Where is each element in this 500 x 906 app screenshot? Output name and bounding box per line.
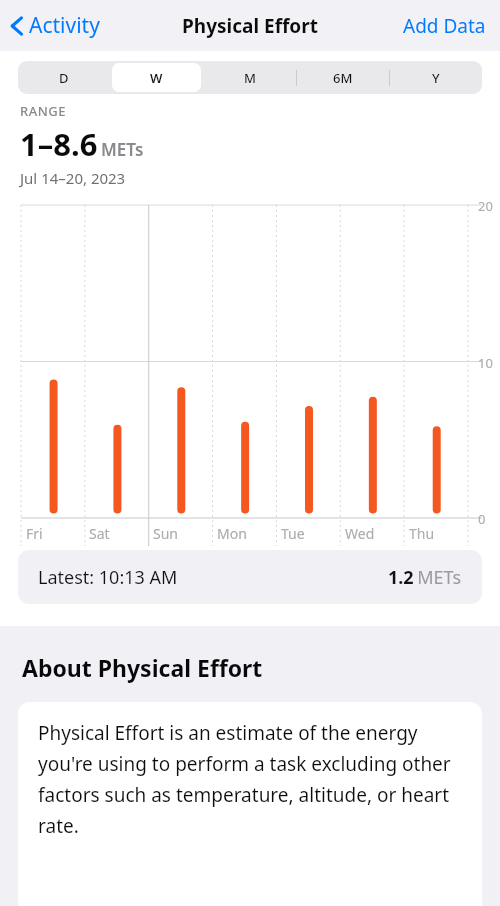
staticText: Thu [409, 524, 435, 543]
staticText: Physical Effort [182, 13, 318, 39]
staticText: M [244, 69, 256, 87]
staticText: 6M [333, 69, 353, 87]
staticText: Sun [153, 524, 178, 543]
button[interactable]: M [205, 63, 294, 92]
staticText: Jul 14–20, 2023 [20, 168, 126, 188]
staticText: Sat [89, 524, 110, 543]
button[interactable]: D [20, 63, 108, 92]
staticText: D [59, 69, 69, 87]
staticText: 0 [478, 510, 486, 528]
staticText: Latest: 10:13 AM [38, 565, 178, 590]
staticText: 10 [478, 354, 493, 372]
staticText: 20 [478, 197, 493, 215]
button[interactable]: W [112, 63, 201, 92]
staticText: RANGE [20, 102, 67, 120]
staticText: Add Data [403, 13, 486, 39]
button[interactable]: Y [391, 63, 480, 92]
staticText: Wed [345, 524, 375, 543]
button[interactable]: Activity [0, 7, 108, 44]
staticText: Activity [29, 11, 100, 40]
button[interactable]: Latest: 10:13 AM [18, 550, 482, 604]
staticText: Tue [281, 524, 305, 543]
staticText: W [150, 69, 163, 87]
staticText: Mon [217, 524, 247, 543]
staticText: 1.2 METs [388, 565, 462, 590]
staticText: About Physical Effort [22, 652, 263, 683]
staticText: Fri [26, 524, 43, 543]
staticText: 1–8.6 METs [20, 123, 144, 165]
button[interactable]: Add Data [389, 7, 500, 45]
staticText: Y [432, 69, 440, 87]
button[interactable]: 6M [298, 63, 387, 92]
staticText: Physical Effort is an estimate of the en… [38, 720, 466, 839]
